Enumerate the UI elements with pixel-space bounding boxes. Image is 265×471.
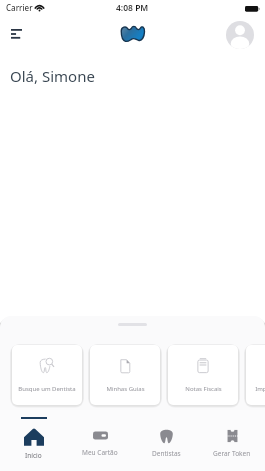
staticText: Imposto de Renda <box>255 385 265 393</box>
button[interactable]: Gerar Token <box>199 410 265 471</box>
staticText: Início <box>25 451 42 460</box>
button[interactable]: Notas Fiscais <box>168 345 238 405</box>
staticText: Meu Cartão <box>82 448 118 457</box>
staticText: Notas Fiscais <box>185 385 222 393</box>
staticText: 4:08 PM <box>116 2 149 14</box>
staticText: Gerar Token <box>213 449 251 458</box>
button[interactable]: Imposto de Renda <box>246 345 265 405</box>
button[interactable]: Minhas Guias <box>90 345 160 405</box>
button[interactable]: Meu Cartão <box>67 410 133 471</box>
staticText: Carrier <box>6 2 33 13</box>
button[interactable]: Início <box>0 410 67 471</box>
staticText: Minhas Guias <box>106 385 145 393</box>
staticText: Olá, Simone <box>10 66 95 86</box>
button[interactable]: Dentistas <box>133 410 199 471</box>
staticText: Dentistas <box>152 449 181 458</box>
button[interactable]: Busque um Dentista <box>12 345 82 405</box>
button[interactable]: Profile <box>226 21 254 49</box>
staticText: Busque um Dentista <box>18 385 76 393</box>
button[interactable]: Menu <box>5 23 27 45</box>
